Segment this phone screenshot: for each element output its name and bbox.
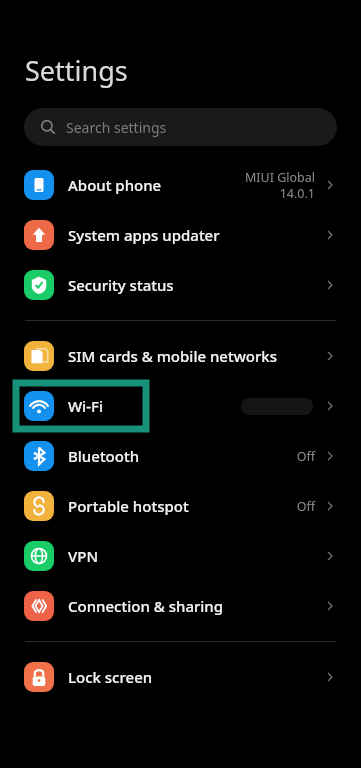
staticText: MIUI Global 14.0.1: [244, 169, 315, 201]
staticText: Lock screen: [68, 667, 153, 687]
button[interactable]: Connection & sharing: [0, 581, 361, 631]
staticText: Off: [296, 448, 315, 465]
staticText: Wi-Fi: [68, 396, 103, 416]
staticText: Settings: [25, 52, 128, 89]
staticText: Security status: [68, 275, 174, 295]
staticText: About phone: [68, 175, 162, 195]
button[interactable]: Lock screen: [0, 652, 361, 702]
staticText: SIM cards & mobile networks: [68, 346, 277, 366]
button[interactable]: Bluetooth: [0, 431, 361, 481]
staticText: Connection & sharing: [68, 596, 224, 616]
button[interactable]: Portable hotspot: [0, 481, 361, 531]
button[interactable]: About phone: [0, 160, 361, 210]
button[interactable]: Search settings: [24, 108, 337, 146]
staticText: Bluetooth: [68, 446, 140, 466]
staticText: VPN: [68, 546, 99, 566]
staticText: System apps updater: [68, 225, 220, 245]
button[interactable]: System apps updater: [0, 210, 361, 260]
button[interactable]: Wi-Fi: [0, 381, 361, 431]
staticText: Off: [296, 498, 315, 515]
button[interactable]: VPN: [0, 531, 361, 581]
staticText: Search settings: [66, 118, 167, 137]
button[interactable]: SIM cards & mobile networks: [0, 331, 361, 381]
button[interactable]: Security status: [0, 260, 361, 310]
staticText: Portable hotspot: [68, 496, 189, 516]
